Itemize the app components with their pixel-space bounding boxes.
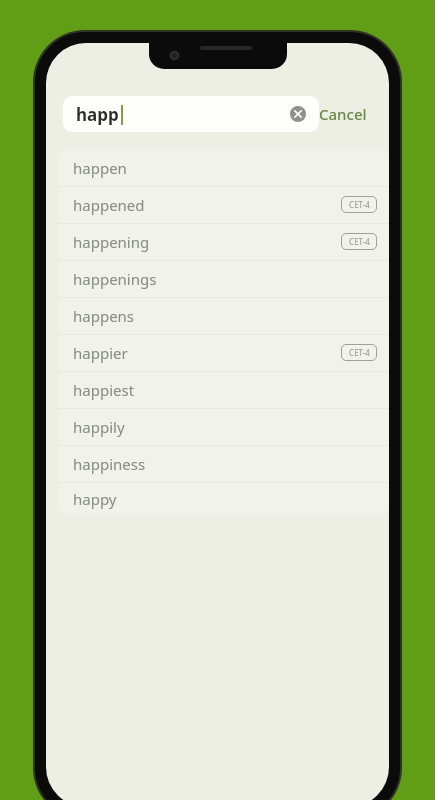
button[interactable]: happier: [59, 334, 389, 371]
staticText: happ: [76, 103, 119, 126]
button[interactable]: happiest: [59, 371, 389, 408]
button[interactable]: happens: [59, 297, 389, 334]
staticText: happen: [73, 158, 127, 178]
button[interactable]: happenings: [59, 260, 389, 297]
staticText: happily: [73, 417, 125, 437]
staticText: happiness: [73, 454, 146, 474]
button[interactable]: happiness: [59, 445, 389, 482]
staticText: happiest: [73, 380, 135, 400]
staticText: CET-4: [349, 347, 370, 358]
button[interactable]: happily: [59, 408, 389, 445]
button[interactable]: happ: [63, 96, 319, 132]
staticText: happened: [73, 195, 145, 215]
button[interactable]: happy: [59, 482, 389, 515]
staticText: CET-4: [349, 199, 370, 210]
button[interactable]: happened: [59, 186, 389, 223]
button[interactable]: happen: [59, 149, 389, 186]
button[interactable]: Clear search text: [287, 103, 309, 125]
staticText: Cancel: [319, 104, 367, 124]
staticText: happier: [73, 343, 128, 363]
staticText: CET-4: [349, 236, 370, 247]
staticText: happenings: [73, 269, 157, 289]
button[interactable]: happening: [59, 223, 389, 260]
button[interactable]: Cancel: [319, 96, 367, 132]
staticText: happening: [73, 232, 150, 252]
staticText: happy: [73, 489, 117, 509]
staticText: happens: [73, 306, 135, 326]
